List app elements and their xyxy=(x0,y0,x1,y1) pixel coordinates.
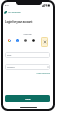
staticText: My Application xyxy=(8,11,21,14)
button[interactable]: Forgot Password? xyxy=(5,72,50,75)
button[interactable]: Email xyxy=(5,52,50,58)
staticText: Password xyxy=(7,66,15,69)
staticText: 9:41 xyxy=(5,4,9,7)
button[interactable]: Sign in with Facebook xyxy=(16,39,19,42)
staticText: Login with xyxy=(5,33,50,36)
button[interactable]: Sign in with Apple xyxy=(24,39,27,42)
button[interactable]: My Application xyxy=(4,11,21,14)
button[interactable]: Sign in with Google xyxy=(8,39,11,42)
button[interactable]: Log in xyxy=(5,95,50,102)
button[interactable]: Password xyxy=(5,64,50,70)
staticText: Login for your account xyxy=(5,20,33,24)
staticText: Email xyxy=(7,54,12,57)
button[interactable]: More options xyxy=(41,37,48,47)
button[interactable]: Sign in with X xyxy=(32,39,35,42)
staticText: Log in xyxy=(25,97,31,100)
